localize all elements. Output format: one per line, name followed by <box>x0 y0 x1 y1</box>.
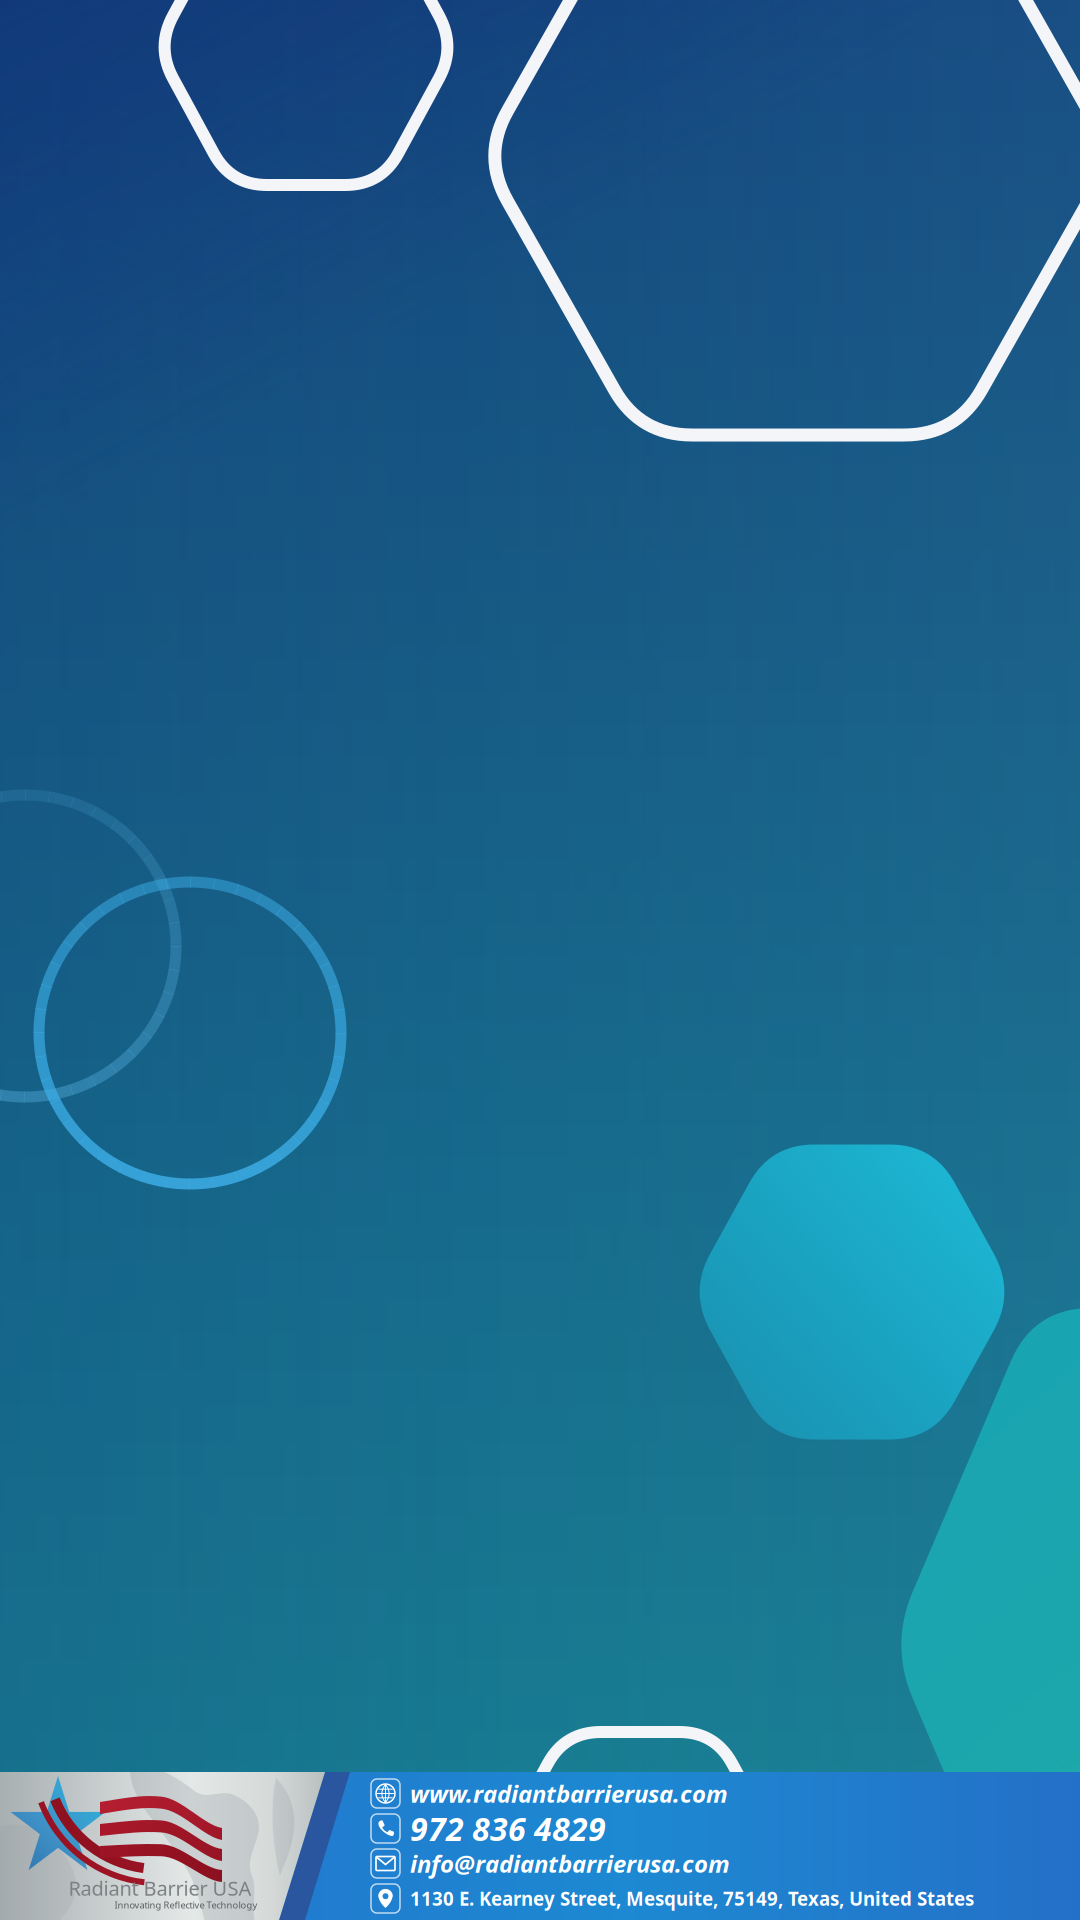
staticText: 972 836 4829 <box>410 1807 606 1850</box>
staticText: Radiant Barrier USA <box>68 1875 251 1901</box>
button[interactable]: Address 1130 E. Kearney Street, Mesquite… <box>371 1881 974 1916</box>
staticText: www.radiantbarrierusa.com <box>410 1778 728 1809</box>
button[interactable]: Call 972 836 4829 <box>371 1811 606 1846</box>
staticText: Innovating Reflective Technology <box>114 1899 257 1911</box>
staticText: 1130 E. Kearney Street, Mesquite, 75149,… <box>410 1886 974 1911</box>
button[interactable]: Email info@radiantbarrierusa.com <box>371 1846 730 1881</box>
button[interactable]: Website www.radiantbarrierusa.com <box>371 1776 728 1811</box>
staticText: info@radiantbarrierusa.com <box>410 1848 730 1879</box>
